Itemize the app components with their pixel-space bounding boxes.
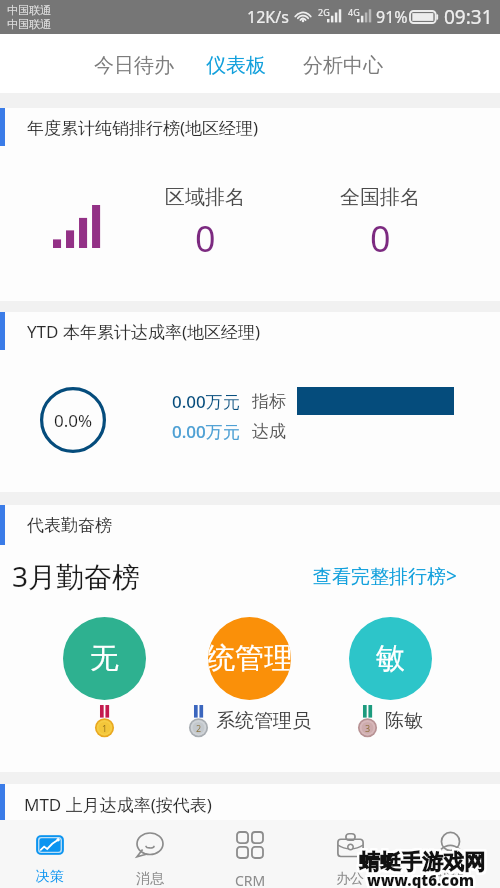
staticText: 蜻蜓手游戏网 — [360, 847, 486, 873]
staticText: www.qt6.com — [367, 872, 474, 888]
staticText: 蜻蜓手游戏网 — [361, 850, 487, 876]
staticText: 1 — [102, 722, 108, 734]
staticText: www.qt6.com — [367, 869, 474, 888]
staticText: 蜻蜓手游戏网 — [358, 848, 484, 874]
staticText: 蜻蜓手游戏网 — [357, 848, 483, 874]
staticText: www.qt6.com — [365, 872, 472, 888]
button[interactable]: 系统管理员 — [208, 617, 291, 700]
staticText: www.qt6.com — [368, 870, 475, 888]
staticText: 2 — [196, 722, 202, 734]
staticText: 4G — [348, 6, 360, 18]
staticText: 系统管理员 — [208, 640, 291, 677]
button[interactable]: MTD 上月达成率(按代表) — [0, 784, 500, 825]
staticText: 蜻蜓手游戏网 — [360, 850, 486, 876]
staticText: 蜻蜓手游戏网 — [357, 847, 483, 873]
staticText: www.qt6.com — [369, 870, 476, 888]
staticText: 0 — [195, 214, 216, 263]
staticText: 指标 — [252, 391, 286, 412]
staticText: www.qt6.com — [368, 868, 475, 888]
staticText: 蜻蜓手游戏网 — [358, 849, 484, 875]
staticText: 0.0% — [54, 409, 93, 432]
staticText: 蜻蜓手游戏网 — [360, 848, 486, 874]
staticText: MTD 上月达成率(按代表) — [24, 793, 212, 816]
button[interactable]: 分析中心 — [297, 43, 389, 88]
staticText: YTD 本年累计达成率(地区经理) — [27, 320, 261, 343]
staticText: 蜻蜓手游戏网 — [360, 851, 486, 877]
button[interactable]: 今日待办 — [88, 43, 180, 88]
staticText: www.qt6.com — [369, 871, 476, 888]
staticText: 消息 — [136, 870, 164, 888]
staticText: 蜻蜓手游戏网 — [359, 851, 485, 877]
staticText: www.qt6.com — [366, 870, 473, 888]
button[interactable]: 消息 — [100, 820, 200, 888]
staticText: 办公 — [336, 870, 364, 888]
staticText: www.qt6.com — [368, 869, 475, 888]
staticText: www.qt6.com — [365, 870, 472, 888]
staticText: 系统管理员 — [216, 709, 311, 733]
staticText: www.qt6.com — [367, 868, 474, 888]
staticText: 91% — [376, 6, 408, 28]
button[interactable]: 无 — [63, 617, 146, 700]
staticText: 蜻蜓手游戏网 — [361, 851, 487, 877]
staticText: 蜻蜓手游戏网 — [357, 850, 483, 876]
staticText: www.qt6.com — [367, 871, 474, 888]
staticText: www.qt6.com — [369, 869, 476, 888]
staticText: www.qt6.com — [369, 872, 476, 888]
staticText: 3月勤奋榜 — [12, 557, 141, 595]
staticText: 区域排名 — [165, 185, 245, 210]
staticText: 09:31 — [444, 4, 493, 30]
staticText: 蜻蜓手游戏网 — [359, 850, 485, 876]
staticText: 蜻蜓手游戏网 — [357, 851, 483, 877]
button[interactable]: 查看完整排行榜> — [313, 563, 457, 589]
button[interactable]: 办公 — [300, 820, 400, 888]
staticText: www.qt6.com — [367, 870, 474, 888]
button[interactable]: 敏 — [349, 617, 432, 700]
staticText: www.qt6.com — [366, 868, 473, 888]
staticText: 3 — [365, 722, 371, 734]
staticText: www.qt6.com — [366, 869, 473, 888]
staticText: 达成 — [252, 421, 286, 442]
staticText: www.qt6.com — [369, 868, 476, 888]
staticText: 2G — [318, 6, 330, 18]
staticText: 蜻蜓手游戏网 — [358, 851, 484, 877]
button[interactable]: YTD 本年累计达成率(地区经理) — [0, 312, 500, 492]
staticText: 无 — [90, 640, 119, 677]
staticText: 查看完整排行榜> — [313, 563, 457, 589]
staticText: 0 — [370, 214, 391, 263]
staticText: 决策 — [36, 868, 64, 886]
staticText: www.qt6.com — [368, 872, 475, 888]
staticText: 蜻蜓手游戏网 — [361, 848, 487, 874]
staticText: 蜻蜓手游戏网 — [359, 847, 485, 873]
button[interactable]: 年度累计纯销排行榜(地区经理) — [0, 108, 500, 301]
staticText: 蜻蜓手游戏网 — [358, 847, 484, 873]
staticText: 中国联通 — [7, 3, 51, 17]
staticText: www.qt6.com — [366, 872, 473, 888]
staticText: 蜻蜓手游戏网 — [361, 849, 487, 875]
staticText: 蜻蜓手游戏网 — [358, 850, 484, 876]
staticText: www.qt6.com — [365, 869, 472, 888]
staticText: 12K/s — [247, 6, 289, 28]
staticText: 蜻蜓手游戏网 — [360, 849, 486, 875]
staticText: 0.00万元 — [172, 420, 240, 443]
staticText: 全国排名 — [340, 185, 420, 210]
button[interactable]: 我的 — [400, 820, 500, 888]
button[interactable]: 代表勤奋榜 — [0, 505, 500, 772]
staticText: 蜻蜓手游戏网 — [361, 847, 487, 873]
staticText: 年度累计纯销排行榜(地区经理) — [27, 116, 259, 139]
staticText: 0.00万元 — [172, 390, 240, 413]
staticText: 蜻蜓手游戏网 — [359, 849, 485, 875]
staticText: 我的 — [436, 870, 464, 888]
button[interactable]: 仪表板 — [200, 43, 272, 88]
staticText: 仪表板 — [206, 53, 266, 78]
button[interactable]: CRM — [200, 820, 300, 888]
staticText: 代表勤奋榜 — [27, 515, 112, 536]
staticText: 中国联通 — [7, 17, 51, 31]
staticText: CRM — [235, 871, 266, 888]
staticText: 分析中心 — [303, 53, 383, 78]
staticText: www.qt6.com — [365, 868, 472, 888]
staticText: www.qt6.com — [366, 871, 473, 888]
staticText: www.qt6.com — [365, 871, 472, 888]
button[interactable]: 决策 — [0, 820, 100, 888]
staticText: www.qt6.com — [368, 871, 475, 888]
staticText: 蜻蜓手游戏网 — [359, 848, 485, 874]
